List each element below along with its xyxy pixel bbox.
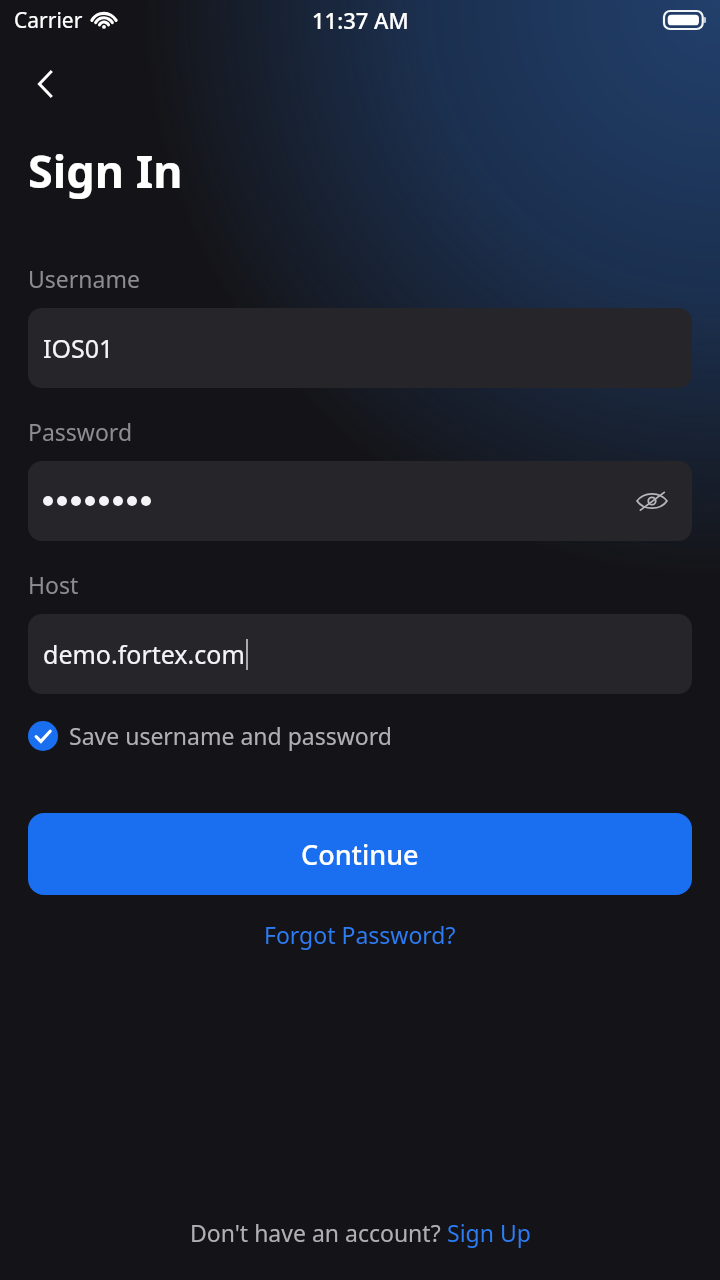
button[interactable]: Save username and password: [26, 716, 394, 755]
staticText: Continue: [301, 836, 419, 873]
staticText: Carrier: [14, 6, 83, 35]
button[interactable]: Sign Up: [447, 1217, 531, 1248]
staticText: Username: [28, 263, 140, 294]
button[interactable]: Forgot Password?: [244, 911, 476, 958]
button[interactable]: Back: [14, 52, 78, 116]
button[interactable]: Continue: [28, 813, 692, 895]
button[interactable]: Show password: [622, 471, 682, 531]
staticText: Password: [28, 416, 133, 447]
staticText: Forgot Password?: [264, 919, 456, 950]
button[interactable]: Show password: [28, 461, 692, 541]
staticText: demo.fortex.com: [43, 637, 245, 671]
staticText: Save username and password: [69, 720, 392, 751]
staticText: Don't have an account?: [190, 1217, 447, 1248]
button[interactable]: demo.fortex.com: [28, 614, 692, 694]
staticText: 11:37 AM: [312, 5, 409, 35]
staticText: Sign Up: [447, 1217, 531, 1248]
staticText: Host: [28, 569, 79, 600]
button[interactable]: IOS01: [28, 308, 692, 388]
staticText: Sign In: [28, 140, 183, 201]
staticText: IOS01: [43, 331, 114, 365]
